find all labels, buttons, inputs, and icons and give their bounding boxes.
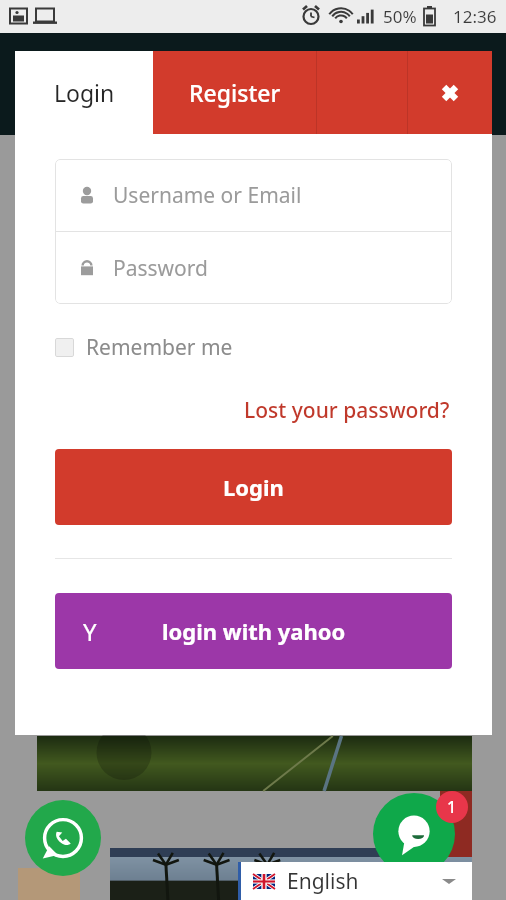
- button[interactable]: WhatsApp: [25, 800, 101, 876]
- button[interactable]: Register: [153, 51, 316, 134]
- button[interactable]: Y: [55, 593, 452, 669]
- staticText: 1: [447, 796, 457, 818]
- staticText: Y: [83, 615, 97, 648]
- button[interactable]: Password: [55, 232, 452, 304]
- staticText: Remember me: [86, 333, 233, 362]
- staticText: 12:36: [453, 5, 497, 28]
- staticText: Username or Email: [113, 181, 302, 210]
- staticText: Password: [113, 254, 208, 283]
- button[interactable]: Close: [408, 51, 492, 134]
- button[interactable]: Login: [55, 449, 452, 525]
- staticText: Login: [223, 472, 284, 502]
- button[interactable]: Login: [15, 51, 153, 134]
- button[interactable]: English: [238, 862, 472, 900]
- staticText: English: [287, 867, 359, 896]
- staticText: Lost your password?: [244, 396, 450, 425]
- staticText: 50%: [383, 5, 417, 28]
- button[interactable]: Chat: [373, 793, 455, 875]
- button[interactable]: Username or Email: [55, 159, 452, 231]
- staticText: login with yahoo: [162, 616, 346, 646]
- staticText: Login: [54, 77, 115, 108]
- button[interactable]: Lost your password?: [242, 394, 452, 427]
- staticText: Register: [189, 77, 281, 108]
- button[interactable]: Remember me: [55, 331, 233, 364]
